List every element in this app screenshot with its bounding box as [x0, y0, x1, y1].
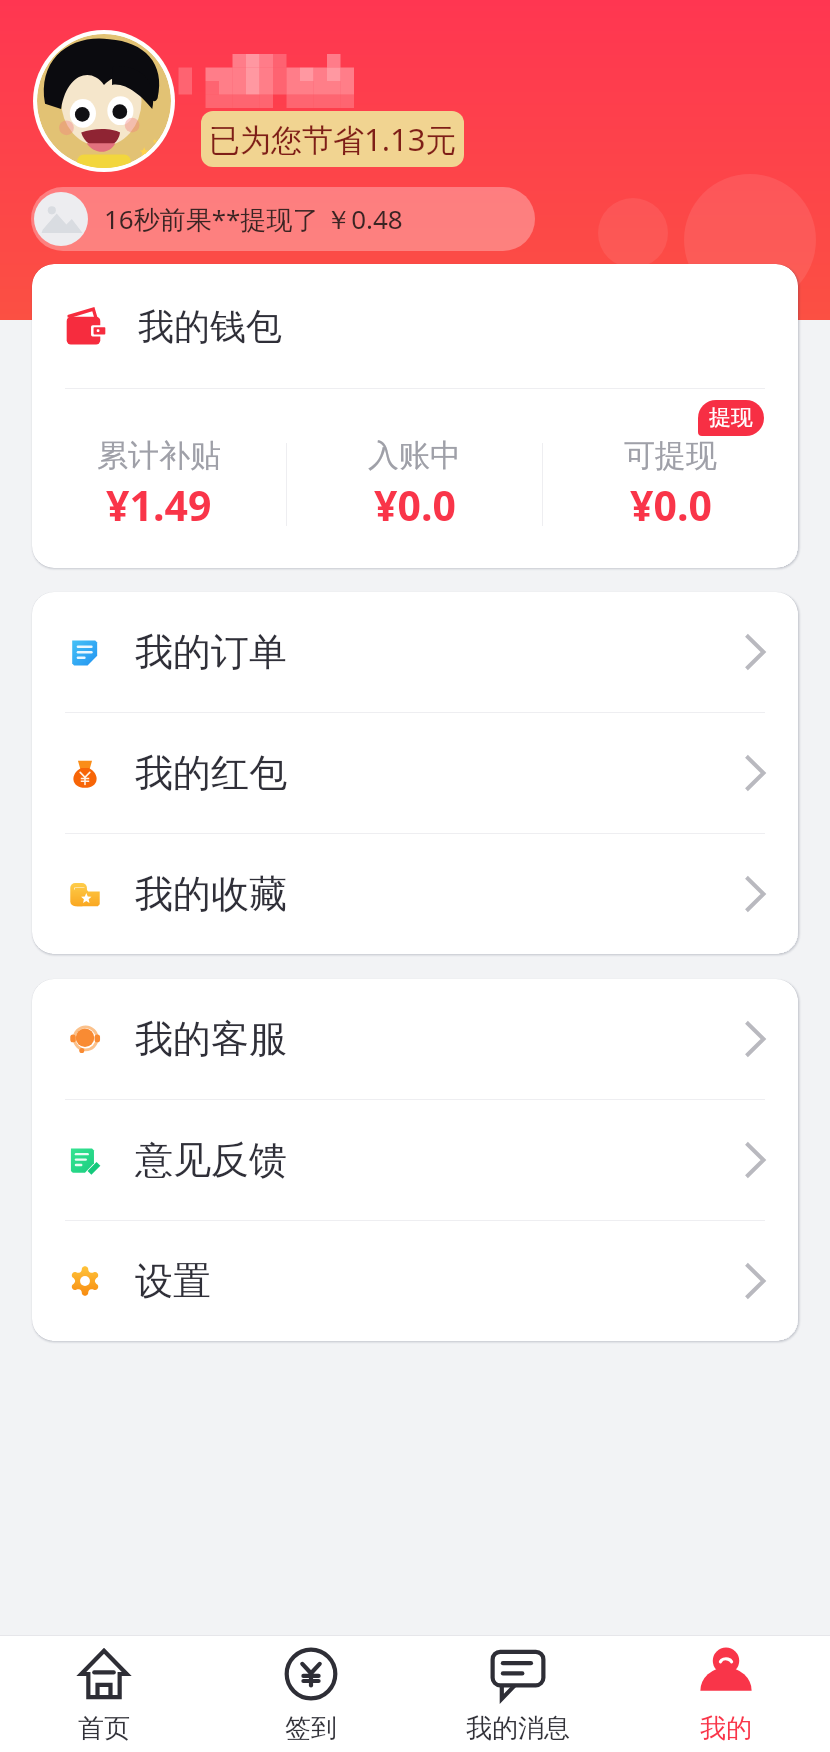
staticText: 意见反馈 — [135, 1136, 287, 1184]
staticText: ¥0.0 — [630, 477, 712, 533]
staticText: 可提现 — [624, 436, 717, 475]
button[interactable]: 首页 — [0, 1636, 207, 1752]
staticText: 我的消息 — [466, 1712, 570, 1745]
staticText: 我的收藏 — [135, 870, 287, 918]
button[interactable]: 已为您节省1.13元 — [201, 111, 464, 167]
staticText: 我的红包 — [135, 749, 287, 797]
button[interactable]: User avatar — [33, 30, 175, 172]
staticText: 累计补贴 — [97, 436, 221, 475]
button[interactable]: 16秒前果**提现了 ￥0.48 — [31, 187, 535, 251]
staticText: ¥0.0 — [374, 477, 456, 533]
button[interactable]: 我的客服 — [32, 979, 798, 1099]
staticText: 我的 — [700, 1712, 752, 1745]
button[interactable]: 设置 — [32, 1221, 798, 1341]
staticText: 16秒前果**提现了 ￥0.48 — [104, 201, 403, 237]
button[interactable]: 入账中 — [287, 389, 542, 567]
button[interactable]: 累计补贴 — [32, 389, 286, 567]
staticText: ¥1.49 — [106, 477, 212, 533]
staticText: 签到 — [285, 1712, 337, 1745]
staticText: 设置 — [135, 1257, 211, 1305]
button[interactable]: 我的消息 — [414, 1636, 622, 1752]
staticText: 首页 — [78, 1712, 130, 1745]
button[interactable]: 签到 — [207, 1636, 414, 1752]
button[interactable]: 我的订单 — [32, 592, 798, 712]
staticText: 我的订单 — [135, 628, 287, 676]
button[interactable]: 我的红包 — [32, 713, 798, 833]
button[interactable]: 提现 — [698, 400, 764, 436]
staticText: 我的客服 — [135, 1015, 287, 1063]
button[interactable]: 我的 — [622, 1636, 830, 1752]
button[interactable]: 意见反馈 — [32, 1100, 798, 1220]
staticText: 已为您节省1.13元 — [209, 118, 457, 160]
button[interactable]: 我的收藏 — [32, 834, 798, 954]
staticText: 入账中 — [368, 436, 461, 475]
button[interactable]: 可提现 — [543, 389, 798, 567]
staticText: 提现 — [709, 404, 753, 432]
staticText: 我的钱包 — [138, 304, 282, 349]
